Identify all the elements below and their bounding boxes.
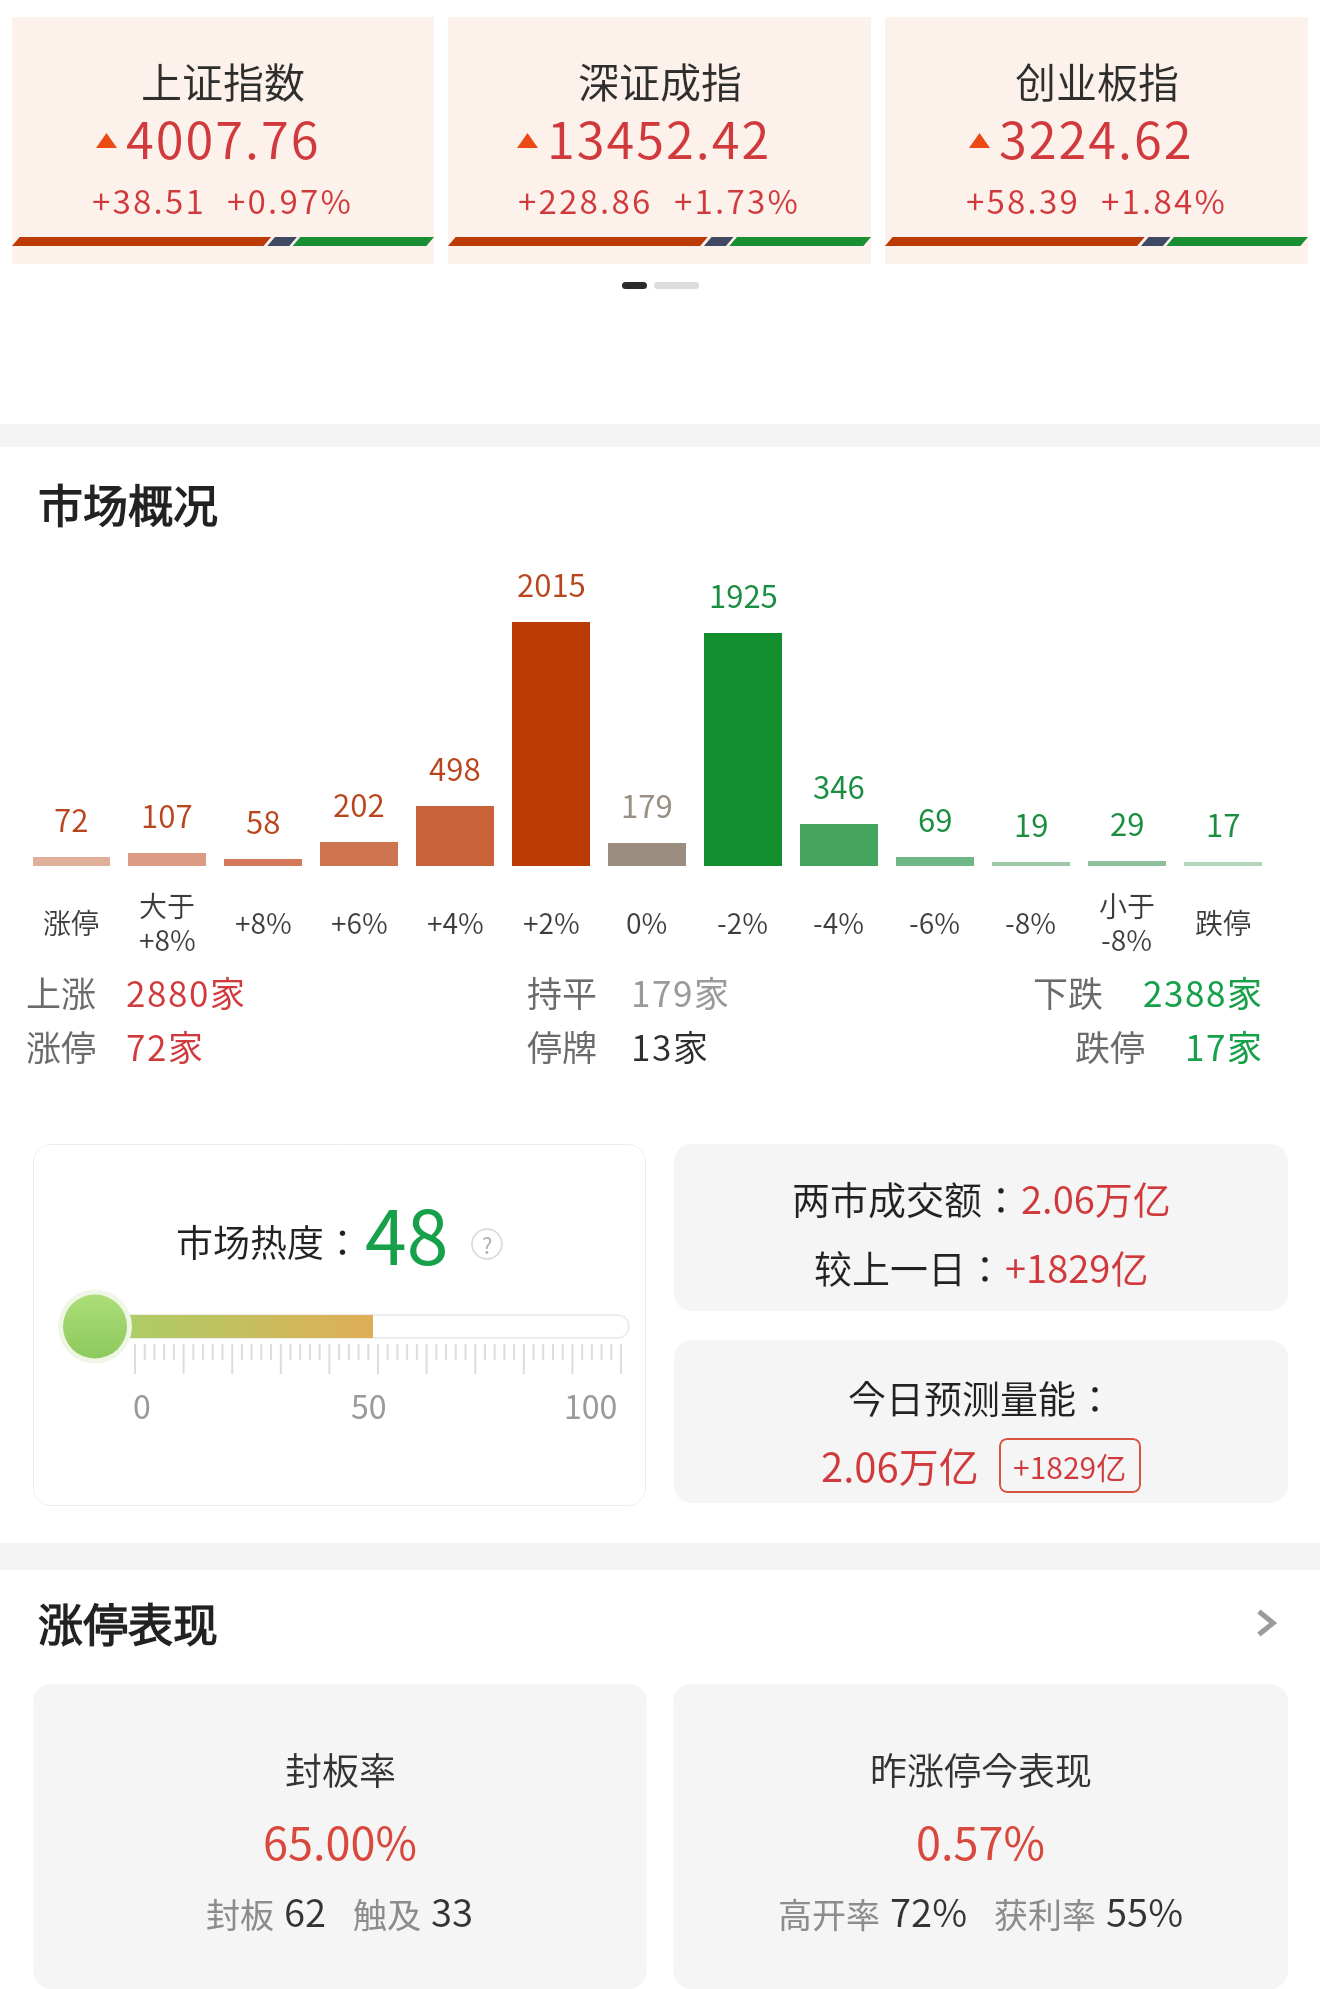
button[interactable]: 深证成指: [448, 17, 871, 264]
staticText: 上涨: [26, 966, 97, 1017]
staticText: 17家: [1185, 1020, 1264, 1071]
staticText: 58: [246, 798, 281, 843]
button[interactable]: 昨涨停今表现: [673, 1684, 1288, 1989]
staticText: 72%: [890, 1883, 968, 1938]
staticText: 封板率: [285, 1742, 396, 1796]
button[interactable]: Page 2: [654, 282, 699, 289]
staticText: +38.51: [92, 176, 206, 224]
staticText: 50: [351, 1382, 387, 1428]
button[interactable]: 封板率: [33, 1684, 647, 1989]
staticText: 48: [365, 1178, 449, 1287]
staticText: 小于: [1099, 890, 1156, 924]
staticText: 0: [133, 1382, 151, 1428]
staticText: 涨停: [43, 907, 100, 941]
staticText: 上证指数: [141, 50, 305, 109]
staticText: 17: [1206, 801, 1241, 846]
staticText: +1829亿: [1013, 1444, 1127, 1487]
staticText: 107: [141, 792, 193, 837]
button[interactable]: 两市成交额：: [674, 1144, 1288, 1311]
staticText: +1.73%: [674, 176, 801, 224]
staticText: 封板: [206, 1889, 274, 1938]
staticText: 市场概况: [38, 471, 219, 536]
staticText: +6%: [331, 907, 388, 941]
staticText: 停牌: [527, 1020, 598, 1071]
staticText: 跌停: [1075, 1020, 1146, 1071]
button[interactable]: 帮助: [471, 1228, 503, 1260]
staticText: 4007.76: [126, 101, 321, 173]
staticText: 3224.62: [999, 101, 1194, 173]
staticText: ?: [482, 1228, 493, 1260]
staticText: 跌停: [1195, 907, 1252, 941]
staticText: 2.06万亿: [1021, 1170, 1171, 1225]
staticText: 市场热度：: [176, 1214, 361, 1268]
staticText: 获利率: [994, 1889, 1096, 1938]
staticText: 持平: [527, 966, 598, 1017]
staticText: 498: [429, 745, 481, 790]
staticText: 72家: [126, 1020, 205, 1071]
staticText: 昨涨停今表现: [870, 1742, 1092, 1796]
staticText: 2.06万亿: [821, 1436, 979, 1494]
staticText: 13家: [631, 1020, 710, 1071]
staticText: 72: [54, 796, 89, 841]
staticText: 202: [333, 781, 385, 826]
staticText: +0.97%: [227, 176, 354, 224]
staticText: +58.39: [966, 176, 1080, 224]
staticText: 179家: [631, 966, 731, 1017]
staticText: 13452.42: [547, 101, 772, 173]
staticText: 创业板指: [1015, 50, 1179, 109]
staticText: 2015: [517, 561, 586, 606]
staticText: -8%: [1005, 907, 1057, 941]
staticText: +1829亿: [1005, 1239, 1149, 1294]
staticText: 触及: [353, 1889, 421, 1938]
staticText: -2%: [717, 907, 769, 941]
staticText: 179: [621, 782, 673, 827]
staticText: 0%: [626, 907, 668, 941]
staticText: 346: [813, 763, 865, 808]
staticText: +8%: [235, 907, 292, 941]
staticText: 33: [431, 1883, 474, 1938]
staticText: 涨停表现: [38, 1590, 219, 1655]
button[interactable]: Page 1: [622, 282, 647, 289]
staticText: 29: [1110, 800, 1145, 845]
staticText: 涨停: [26, 1020, 97, 1071]
button[interactable]: 涨停表现: [38, 1590, 1282, 1655]
staticText: 0.57%: [916, 1808, 1045, 1873]
staticText: 62: [284, 1883, 327, 1938]
staticText: 大于: [139, 890, 196, 924]
staticText: 深证成指: [578, 50, 742, 109]
staticText: 69: [918, 796, 953, 841]
staticText: -8%: [1101, 924, 1153, 958]
staticText: 两市成交额：: [792, 1170, 1021, 1225]
staticText: 2880家: [126, 966, 247, 1017]
button[interactable]: 上证指数: [12, 17, 434, 264]
staticText: 高开率: [778, 1889, 880, 1938]
staticText: +2%: [523, 907, 580, 941]
staticText: +1.84%: [1101, 176, 1228, 224]
staticText: +4%: [427, 907, 484, 941]
staticText: 下跌: [1033, 966, 1104, 1017]
staticText: +8%: [139, 924, 196, 958]
staticText: -6%: [909, 907, 961, 941]
staticText: 1925: [709, 572, 778, 617]
staticText: 较上一日：: [814, 1239, 1005, 1294]
staticText: -4%: [813, 907, 865, 941]
staticText: +228.86: [518, 176, 653, 224]
staticText: 65.00%: [263, 1808, 417, 1873]
staticText: 2388家: [1143, 966, 1264, 1017]
staticText: 今日预测量能：: [848, 1369, 1115, 1424]
button[interactable]: 市场热度：: [33, 1144, 646, 1506]
button[interactable]: 创业板指: [885, 17, 1308, 264]
button[interactable]: 今日预测量能：: [674, 1340, 1288, 1503]
staticText: 55%: [1106, 1883, 1184, 1938]
staticText: 19: [1014, 801, 1049, 846]
staticText: 100: [564, 1382, 618, 1428]
